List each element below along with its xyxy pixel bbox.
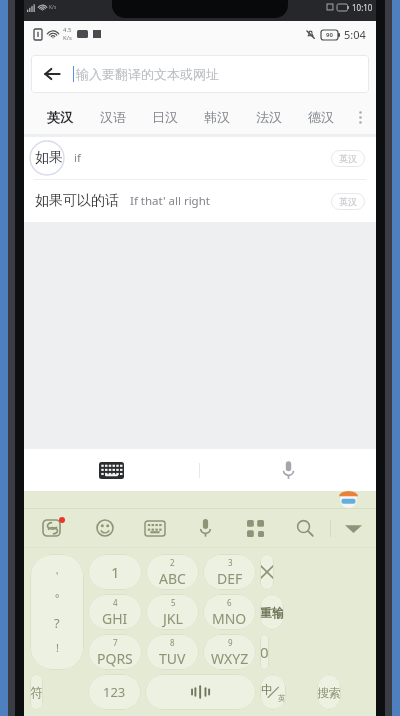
staticText: 搜索: [317, 685, 341, 700]
button[interactable]: 2: [146, 554, 199, 590]
staticText: ABC: [159, 569, 186, 588]
button[interactable]: 1: [88, 554, 142, 590]
button[interactable]: Back: [31, 55, 73, 93]
staticText: 符: [30, 684, 43, 700]
staticText: 如果可以的话: [35, 192, 119, 210]
staticText: 0: [260, 642, 269, 662]
staticText: 1: [111, 562, 120, 582]
button[interactable]: Voice input: [180, 509, 230, 547]
staticText: 英汉: [339, 153, 357, 164]
button[interactable]: 5: [146, 594, 199, 630]
staticText: PQRS: [97, 649, 133, 668]
staticText: if: [74, 150, 81, 166]
button[interactable]: Chinese English toggle: [260, 674, 286, 710]
staticText: 90: [326, 31, 333, 39]
staticText: 10:10: [352, 2, 373, 13]
staticText: ?: [54, 614, 60, 632]
button[interactable]: More languages: [347, 100, 373, 134]
staticText: 6: [227, 597, 232, 608]
staticText: DEF: [217, 569, 243, 588]
staticText: JKL: [163, 609, 183, 628]
button[interactable]: 韩汉: [191, 100, 243, 134]
staticText: 英汉: [47, 109, 73, 125]
button[interactable]: More tools: [230, 509, 280, 547]
staticText: MNO: [212, 609, 247, 628]
button[interactable]: Emoji: [80, 509, 130, 547]
button[interactable]: 6: [203, 594, 256, 630]
staticText: GHI: [102, 609, 128, 628]
staticText: 韩汉: [204, 109, 230, 125]
staticText: K/s: [63, 34, 72, 42]
button[interactable]: Keyboard layout: [130, 509, 180, 547]
button[interactable]: 7: [88, 634, 142, 670]
button[interactable]: 法汉: [243, 100, 295, 134]
staticText: 5: [171, 597, 176, 608]
button[interactable]: 重输: [260, 594, 284, 630]
button[interactable]: Space: [145, 674, 256, 710]
staticText: 英汉: [339, 196, 357, 207]
staticText: 如果: [35, 149, 63, 167]
staticText: WXYZ: [211, 649, 249, 668]
button[interactable]: ': [30, 554, 84, 670]
button[interactable]: 4: [88, 594, 142, 630]
button[interactable]: 符: [30, 674, 43, 710]
staticText: 123: [103, 683, 126, 701]
staticText: If that' all right: [130, 193, 210, 209]
staticText: !: [56, 640, 59, 655]
staticText: 4.5: [63, 26, 72, 34]
staticText: 汉语: [100, 109, 126, 125]
staticText: 中: [261, 682, 273, 697]
button[interactable]: 3: [203, 554, 256, 590]
staticText: TUV: [159, 649, 186, 668]
staticText: 英: [278, 693, 286, 703]
staticText: 德汉: [308, 109, 334, 125]
staticText: 重输: [260, 605, 284, 620]
button[interactable]: 8: [146, 634, 199, 670]
staticText: 输入要翻译的文本或网址: [76, 66, 219, 82]
button[interactable]: 搜索: [317, 674, 341, 710]
button[interactable]: 0: [260, 634, 269, 670]
staticText: 5:04: [344, 27, 366, 42]
staticText: K/s: [49, 4, 57, 11]
staticText: ': [56, 569, 59, 583]
button[interactable]: Sogou input settings: [24, 509, 80, 547]
button[interactable]: 汉语: [86, 100, 139, 134]
staticText: 2: [170, 557, 175, 568]
button[interactable]: 9: [203, 634, 256, 670]
button[interactable]: 英汉: [33, 100, 86, 134]
staticText: °: [55, 591, 60, 605]
staticText: 8: [170, 637, 175, 648]
button[interactable]: 日汉: [139, 100, 191, 134]
staticText: 法汉: [256, 109, 282, 125]
staticText: 3: [228, 557, 233, 568]
staticText: 日汉: [152, 109, 178, 125]
button[interactable]: 德汉: [295, 100, 347, 134]
staticText: 4: [113, 597, 118, 608]
button[interactable]: Hide keyboard: [331, 509, 376, 547]
staticText: 9: [228, 637, 233, 648]
button[interactable]: 如果: [24, 137, 376, 179]
button[interactable]: Voice input: [200, 449, 376, 491]
button[interactable]: 如果可以的话: [24, 180, 376, 222]
button[interactable]: Delete: [260, 554, 274, 590]
button[interactable]: 123: [88, 674, 141, 710]
button[interactable]: Keyboard input: [24, 449, 199, 491]
staticText: 7: [113, 637, 118, 648]
button[interactable]: Search: [280, 509, 330, 547]
